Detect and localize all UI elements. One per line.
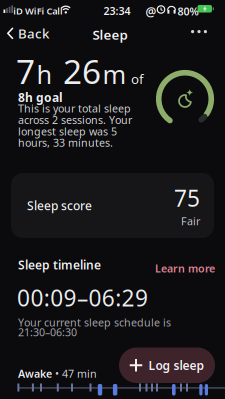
staticText: Back xyxy=(18,24,49,42)
staticText: 21:30–06:30 xyxy=(18,325,77,339)
staticText: • xyxy=(55,366,59,381)
staticText: 8h goal xyxy=(18,89,63,105)
staticText: 7 xyxy=(16,49,35,93)
button[interactable]: More options xyxy=(186,25,212,38)
button[interactable]: Log sleep xyxy=(119,347,215,383)
staticText: @ xyxy=(145,4,156,19)
staticText: h xyxy=(36,57,52,91)
staticText: of xyxy=(128,70,144,88)
staticText: Learn more xyxy=(155,261,215,275)
button[interactable]: Sleep score xyxy=(11,173,214,238)
staticText: 26 xyxy=(54,49,101,93)
button[interactable]: Back xyxy=(0,20,49,46)
staticText: m xyxy=(102,57,126,91)
staticText: 80% xyxy=(177,4,198,18)
staticText: Fair xyxy=(181,214,200,228)
button[interactable]: Learn more xyxy=(152,258,218,278)
staticText: Sleep xyxy=(92,26,127,43)
staticText: 23:34 xyxy=(103,4,130,18)
staticText: 47 min xyxy=(62,366,97,381)
staticText: Sleep score xyxy=(27,197,92,213)
staticText: longest sleep was 5 xyxy=(18,124,117,138)
staticText: iD WiFi Call xyxy=(13,5,63,17)
staticText: hours, 33 minutes. xyxy=(18,136,113,150)
staticText: Sleep timeline xyxy=(18,257,101,273)
staticText: Your current sleep schedule is xyxy=(18,315,171,330)
staticText: 00:09–06:29 xyxy=(17,283,148,313)
staticText: Log sleep xyxy=(148,357,204,373)
staticText: 75 xyxy=(174,183,200,213)
staticText: across 2 sessions. Your xyxy=(18,113,132,127)
staticText: Awake xyxy=(18,366,52,381)
staticText: This is your total sleep xyxy=(18,101,131,116)
